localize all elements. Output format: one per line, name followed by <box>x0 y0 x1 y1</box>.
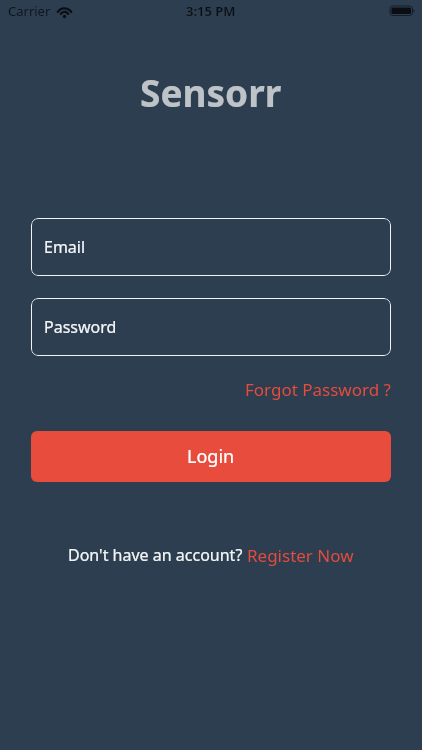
button[interactable]: Register Now <box>247 544 354 567</box>
button[interactable]: Forgot Password ? <box>245 378 391 401</box>
button[interactable]: Email <box>31 218 391 276</box>
staticText: Don't have an account? <box>68 544 247 566</box>
staticText: Sensorr <box>140 67 282 117</box>
staticText: Password <box>44 316 117 338</box>
staticText: Carrier <box>8 2 51 20</box>
staticText: 3:15 PM <box>186 2 236 20</box>
button[interactable]: Login <box>31 431 391 482</box>
staticText: Email <box>44 236 86 258</box>
button[interactable]: Password <box>31 298 391 356</box>
staticText: Login <box>187 444 235 469</box>
